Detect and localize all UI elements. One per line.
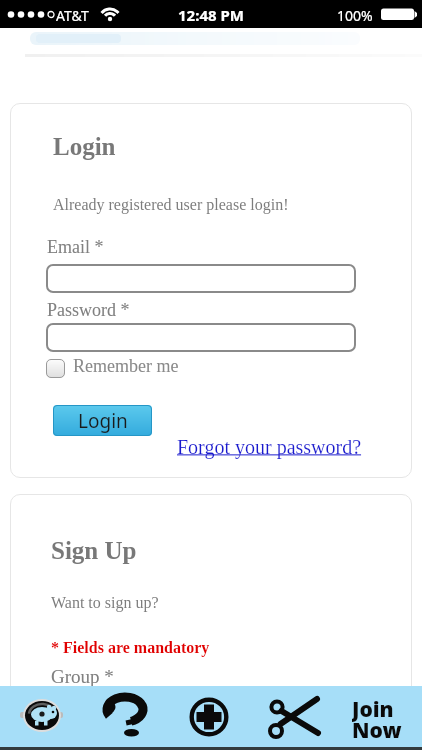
staticText: Sign Up — [51, 537, 137, 565]
staticText: Want to sign up? — [51, 594, 159, 612]
button[interactable] — [20, 697, 64, 737]
staticText: 100% — [337, 6, 373, 25]
staticText: Password * — [47, 300, 130, 320]
staticText: Group * — [51, 666, 114, 687]
staticText: Remember me — [73, 356, 179, 376]
button[interactable]: Forgot your password? — [177, 436, 362, 458]
staticText: Login — [53, 133, 116, 161]
button[interactable] — [263, 694, 321, 740]
staticText: Already registered user please login! — [53, 196, 289, 214]
button[interactable] — [46, 359, 65, 378]
staticText: Login — [78, 408, 128, 434]
button[interactable]: Join Now — [352, 695, 410, 739]
button[interactable] — [103, 693, 147, 739]
button[interactable] — [46, 264, 356, 293]
staticText: AT&T — [56, 6, 89, 25]
button[interactable] — [46, 323, 356, 352]
staticText: * Fields are mandatory — [51, 639, 210, 657]
staticText: Join Now — [352, 695, 402, 739]
staticText: Email * — [47, 237, 104, 257]
button[interactable] — [189, 697, 229, 737]
staticText: 12:48 PM — [178, 5, 244, 25]
button[interactable]: Login — [53, 405, 152, 436]
